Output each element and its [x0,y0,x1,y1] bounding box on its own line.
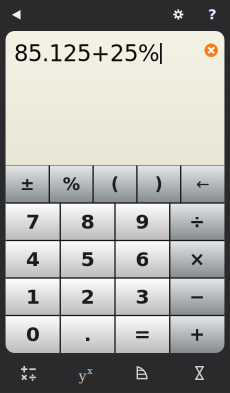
staticText: 1 [26,285,40,308]
button[interactable]: 8 [60,203,115,240]
staticText: 5 [81,248,95,271]
staticText: + [189,323,205,345]
button[interactable]: Arithmetic [0,360,57,386]
button[interactable]: 2 [60,278,115,315]
staticText: 3 [135,285,149,308]
button[interactable]: 1 [5,278,60,315]
button[interactable]: 3 [115,278,170,315]
button[interactable]: ( [93,165,137,203]
button[interactable]: 5 [60,240,115,278]
button[interactable]: 4 [5,240,60,278]
button[interactable]: ± [5,165,49,203]
staticText: % [63,174,80,194]
button[interactable]: 0 [5,315,60,353]
button[interactable]: − [170,278,225,315]
button[interactable]: 9 [115,203,170,240]
button[interactable]: Back [1,1,31,29]
button[interactable]: × [170,240,225,278]
staticText: 8 [81,210,95,233]
staticText: 85.125+25% [14,40,160,67]
staticText: y [79,368,87,384]
staticText: ← [196,175,209,193]
button[interactable]: . [60,315,115,353]
button[interactable]: Geometry [114,360,171,386]
button[interactable]: History [171,360,228,386]
staticText: = [134,323,151,346]
button[interactable]: ← [181,165,224,203]
button[interactable]: 6 [115,240,170,278]
staticText: 6 [135,248,149,271]
staticText: 0 [26,323,40,346]
staticText: ? [208,6,217,23]
button[interactable]: Settings [164,0,192,28]
staticText: 4 [26,248,40,271]
button[interactable]: Clear [200,39,222,61]
button[interactable]: Powers [57,360,114,386]
button[interactable]: + [170,315,225,353]
staticText: 9 [135,210,149,233]
staticText: × [189,248,205,270]
staticText: ÷ [189,211,205,233]
staticText: 2 [81,285,95,308]
staticText: x [87,365,92,376]
staticText: ) [155,174,163,194]
button[interactable]: ÷ [170,203,225,240]
button[interactable]: 7 [5,203,60,240]
staticText: ± [20,174,35,194]
button[interactable]: % [49,165,93,203]
button[interactable]: Help [199,0,227,28]
button[interactable]: = [115,315,170,353]
button[interactable]: ) [137,165,181,203]
staticText: 7 [26,210,40,233]
staticText: − [189,286,205,308]
staticText: ( [111,174,119,194]
staticText: . [84,323,92,346]
